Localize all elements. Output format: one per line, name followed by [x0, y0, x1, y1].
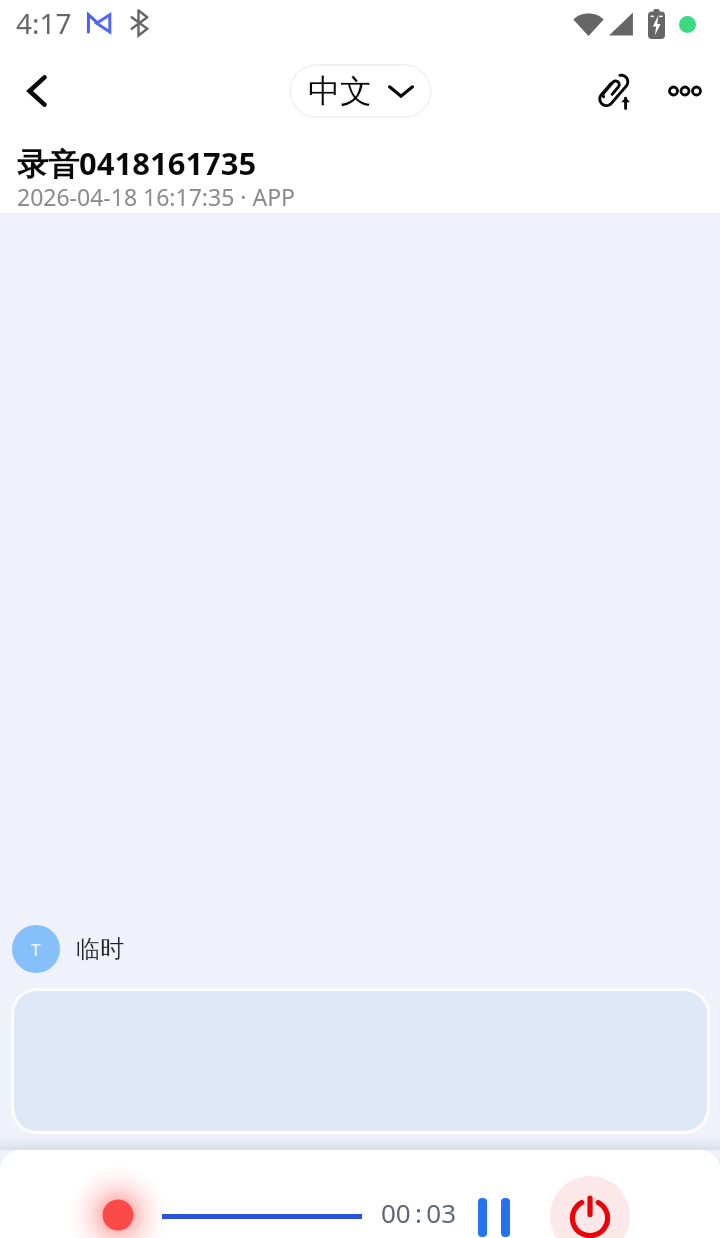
- button[interactable]: 中文: [289, 64, 432, 118]
- button[interactable]: Pause: [466, 1184, 521, 1238]
- staticText: 00 : 03: [381, 1195, 457, 1230]
- staticText: 2026-04-18 16:17:35 · APP: [17, 181, 295, 210]
- button[interactable]: Stop recording: [550, 1176, 630, 1238]
- button[interactable]: More options: [654, 59, 718, 123]
- button[interactable]: Back: [5, 59, 69, 123]
- button[interactable]: Attach: [584, 59, 648, 123]
- staticText: 录音0418161735: [17, 142, 257, 184]
- staticText: 4:17: [16, 4, 72, 42]
- button[interactable]: T: [12, 925, 60, 973]
- staticText: T: [31, 938, 41, 961]
- staticText: 临时: [76, 934, 124, 964]
- staticText: 中文: [308, 71, 372, 111]
